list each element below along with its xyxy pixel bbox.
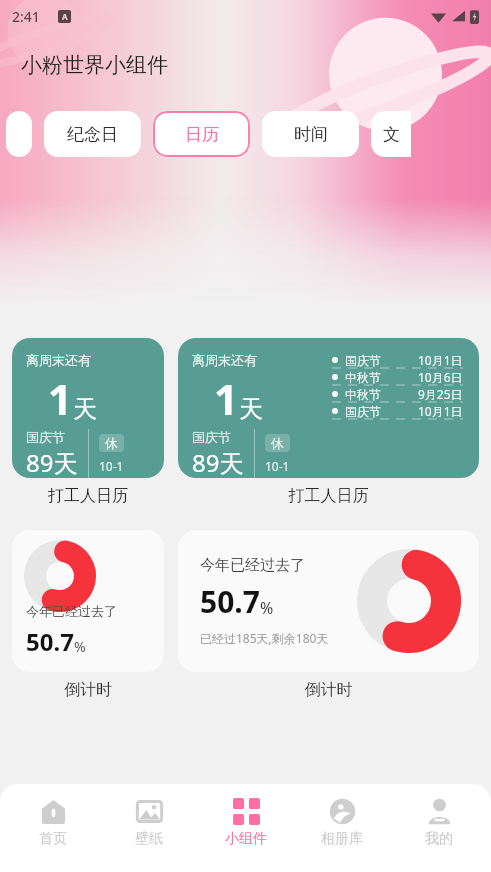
staticText: 天 (73, 394, 97, 424)
staticText: 已经过185天,剩余180天 (200, 630, 329, 646)
staticText: 10-1 (99, 458, 124, 474)
staticText: 50.7 (26, 625, 74, 658)
staticText: 89天 (192, 446, 244, 478)
other: 相册库 (329, 798, 356, 825)
staticText: 日历 (185, 124, 219, 145)
staticText: 打工人日历 (178, 486, 479, 506)
staticText: 纪念日 (67, 124, 118, 145)
staticText: 国庆节 (192, 429, 231, 445)
staticText: 小组件 (225, 830, 267, 848)
staticText: % (74, 637, 86, 656)
button[interactable]: 壁纸 (105, 794, 193, 852)
staticText: 首页 (39, 830, 67, 848)
staticText: 89天 (26, 446, 78, 478)
staticText: 打工人日历 (12, 486, 164, 506)
staticText: 1 (48, 370, 73, 427)
staticText: 9月25日 (418, 386, 463, 402)
staticText: 10月6日 (418, 369, 463, 385)
staticText: 国庆节 (26, 429, 65, 445)
other: 小组件 (233, 798, 260, 825)
staticText: 2:41 (12, 7, 40, 26)
staticText: 10月1日 (418, 403, 463, 419)
staticText: 国庆节 (345, 353, 381, 368)
staticText: 离周末还有 (26, 352, 91, 368)
staticText: 10-1 (265, 458, 290, 474)
staticText: 休 (271, 435, 284, 451)
staticText: 1 (214, 370, 239, 427)
other: 壁纸 (136, 798, 163, 825)
staticText: 休 (105, 435, 118, 451)
button[interactable]: 我的 (395, 794, 483, 852)
other: 首页 (40, 798, 67, 825)
staticText: 10月1日 (418, 352, 463, 368)
button[interactable]: 小组件 (202, 794, 290, 852)
staticText: A (62, 11, 68, 22)
button[interactable]: 离周末还有 (12, 338, 164, 478)
button[interactable]: 今年已经过去了 (12, 530, 164, 672)
button[interactable]: 离周末还有 (178, 338, 479, 478)
button[interactable] (6, 111, 32, 157)
button[interactable]: 文 (371, 111, 411, 157)
staticText: 今年已经过去了 (200, 556, 305, 575)
staticText: 小粉世界小组件 (21, 52, 168, 78)
staticText: 相册库 (321, 830, 363, 848)
staticText: 50.7 (200, 581, 260, 622)
staticText: 中秋节 (345, 387, 381, 402)
button[interactable]: 时间 (262, 111, 359, 157)
staticText: 我的 (425, 830, 453, 848)
staticText: 中秋节 (345, 370, 381, 385)
button[interactable]: 首页 (9, 794, 97, 852)
staticText: 文 (383, 124, 400, 145)
button[interactable]: 日历 (153, 111, 250, 157)
button[interactable]: 今年已经过去了 (178, 530, 479, 672)
button[interactable]: 相册库 (298, 794, 386, 852)
staticText: 倒计时 (178, 680, 479, 700)
button[interactable]: 纪念日 (44, 111, 141, 157)
staticText: 国庆节 (345, 404, 381, 419)
staticText: 倒计时 (12, 680, 164, 700)
staticText: 离周末还有 (192, 352, 257, 368)
staticText: 时间 (294, 124, 328, 145)
other: 我的 (426, 798, 453, 825)
staticText: % (260, 597, 274, 619)
staticText: 今年已经过去了 (26, 603, 117, 619)
staticText: 壁纸 (135, 830, 163, 848)
staticText: 天 (239, 394, 263, 424)
